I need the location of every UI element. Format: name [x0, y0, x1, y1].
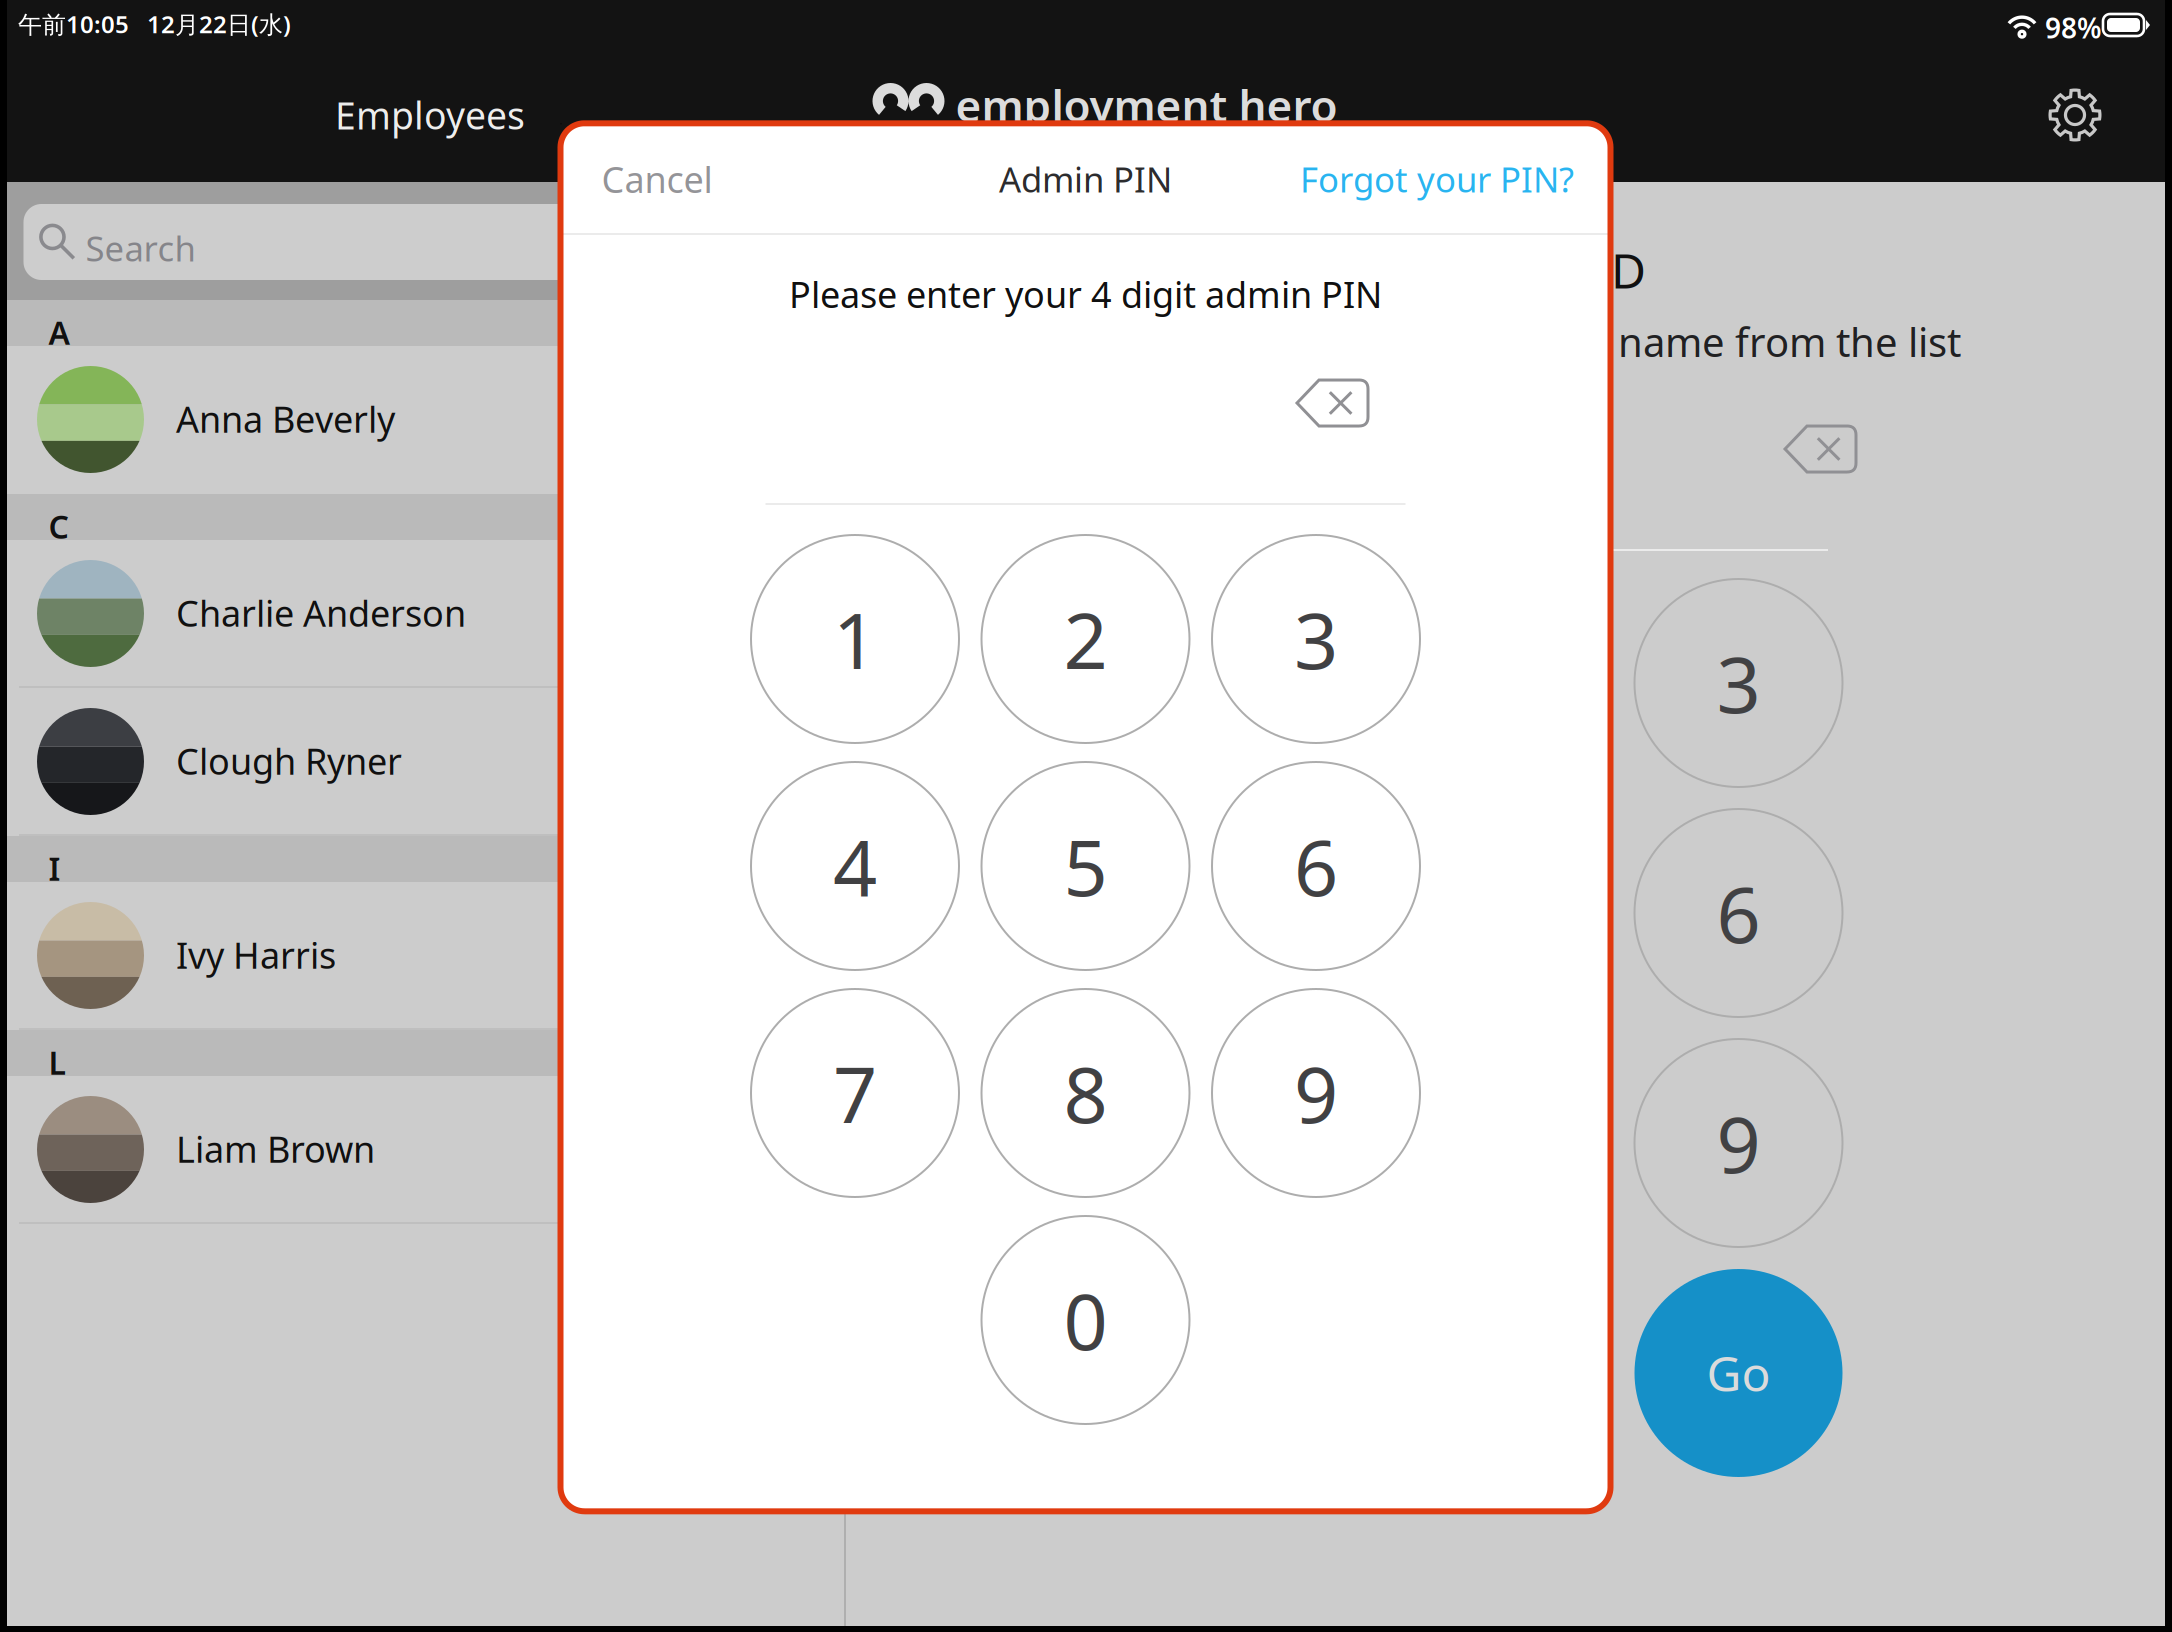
staticText: Enter your ID [1347, 238, 1646, 302]
staticText: 3 [1716, 632, 1760, 734]
staticText: 5 [1063, 815, 1107, 917]
button[interactable]: Anna Beverly [7, 346, 844, 494]
button[interactable]: 8 [981, 989, 1189, 1197]
button[interactable]: 4 [751, 762, 959, 970]
button[interactable]: 0 [1404, 1269, 1612, 1477]
staticText: Clough Ryner [176, 737, 402, 785]
staticText: L [48, 1041, 65, 1083]
staticText: I [48, 847, 60, 889]
staticText: 6 [1716, 862, 1760, 964]
button[interactable]: 6 [1212, 762, 1420, 970]
staticText: 9 [1294, 1042, 1338, 1144]
staticText: C [48, 505, 68, 547]
staticText: 1 [833, 588, 877, 690]
staticText: Anna Beverly [176, 395, 395, 443]
staticText: A [48, 311, 70, 353]
button[interactable]: 0 [981, 1216, 1189, 1424]
staticText: 4 [1255, 862, 1299, 964]
button[interactable]: 2 [1404, 579, 1612, 787]
staticText: Go [1706, 1341, 1770, 1405]
staticText: 7 [1255, 1092, 1299, 1194]
staticText: 4 [833, 815, 877, 917]
staticText: Employees [335, 90, 525, 140]
button[interactable]: 5 [981, 762, 1189, 970]
staticText: Ivy Harris [176, 931, 336, 979]
button[interactable]: 1 [1173, 579, 1381, 787]
staticText: 8 [1063, 1042, 1107, 1144]
staticText: employment hero [955, 76, 1337, 134]
staticText: 7 [833, 1042, 877, 1144]
button[interactable]: 9 [1634, 1039, 1842, 1247]
staticText: 6 [1294, 815, 1338, 917]
button[interactable]: 3 [1634, 579, 1842, 787]
staticText: Forgot your PIN? [1300, 156, 1574, 202]
button[interactable]: Cancel [556, 125, 757, 233]
staticText: 0 [1063, 1269, 1107, 1371]
button[interactable]: Clough Ryner [7, 688, 844, 836]
button[interactable]: 5 [1404, 809, 1612, 1017]
button[interactable]: Forgot your PIN? [1260, 126, 1614, 232]
staticText: Admin PIN [999, 156, 1172, 202]
staticText: 1 [1255, 632, 1299, 734]
staticText: or select your name from the list [1353, 315, 1961, 368]
staticText: 9 [1716, 1092, 1760, 1194]
button[interactable]: Delete [1756, 402, 1883, 495]
staticText: Please enter your 4 digit admin PIN [789, 270, 1382, 318]
button[interactable]: Ivy Harris [7, 882, 844, 1030]
button[interactable]: Settings [2023, 63, 2127, 167]
staticText: Search [85, 225, 195, 271]
staticText: Cancel [601, 155, 712, 203]
button[interactable]: 1 [751, 535, 959, 743]
staticText: Liam Brown [176, 1125, 375, 1173]
staticText: 98% [2045, 9, 2102, 46]
button[interactable]: Charlie Anderson [7, 540, 844, 688]
button[interactable]: 8 [1404, 1039, 1612, 1247]
button[interactable]: Go [1634, 1269, 1842, 1477]
button[interactable]: Search [23, 204, 812, 280]
staticText: 3 [1294, 588, 1338, 690]
button[interactable]: 7 [751, 989, 959, 1197]
button[interactable]: Employees [305, 72, 555, 158]
button[interactable]: 4 [1173, 809, 1381, 1017]
button[interactable]: Liam Brown [7, 1076, 844, 1224]
staticText: 午前10:05 12月22日(水) [18, 8, 291, 40]
button[interactable]: 9 [1212, 989, 1420, 1197]
button[interactable]: 7 [1173, 1039, 1381, 1247]
button[interactable]: 3 [1212, 535, 1420, 743]
staticText: 2 [1063, 588, 1107, 690]
button[interactable]: 2 [981, 535, 1189, 743]
staticText: Charlie Anderson [176, 589, 466, 637]
button[interactable]: 6 [1634, 809, 1842, 1017]
button[interactable]: Delete [1268, 356, 1395, 449]
